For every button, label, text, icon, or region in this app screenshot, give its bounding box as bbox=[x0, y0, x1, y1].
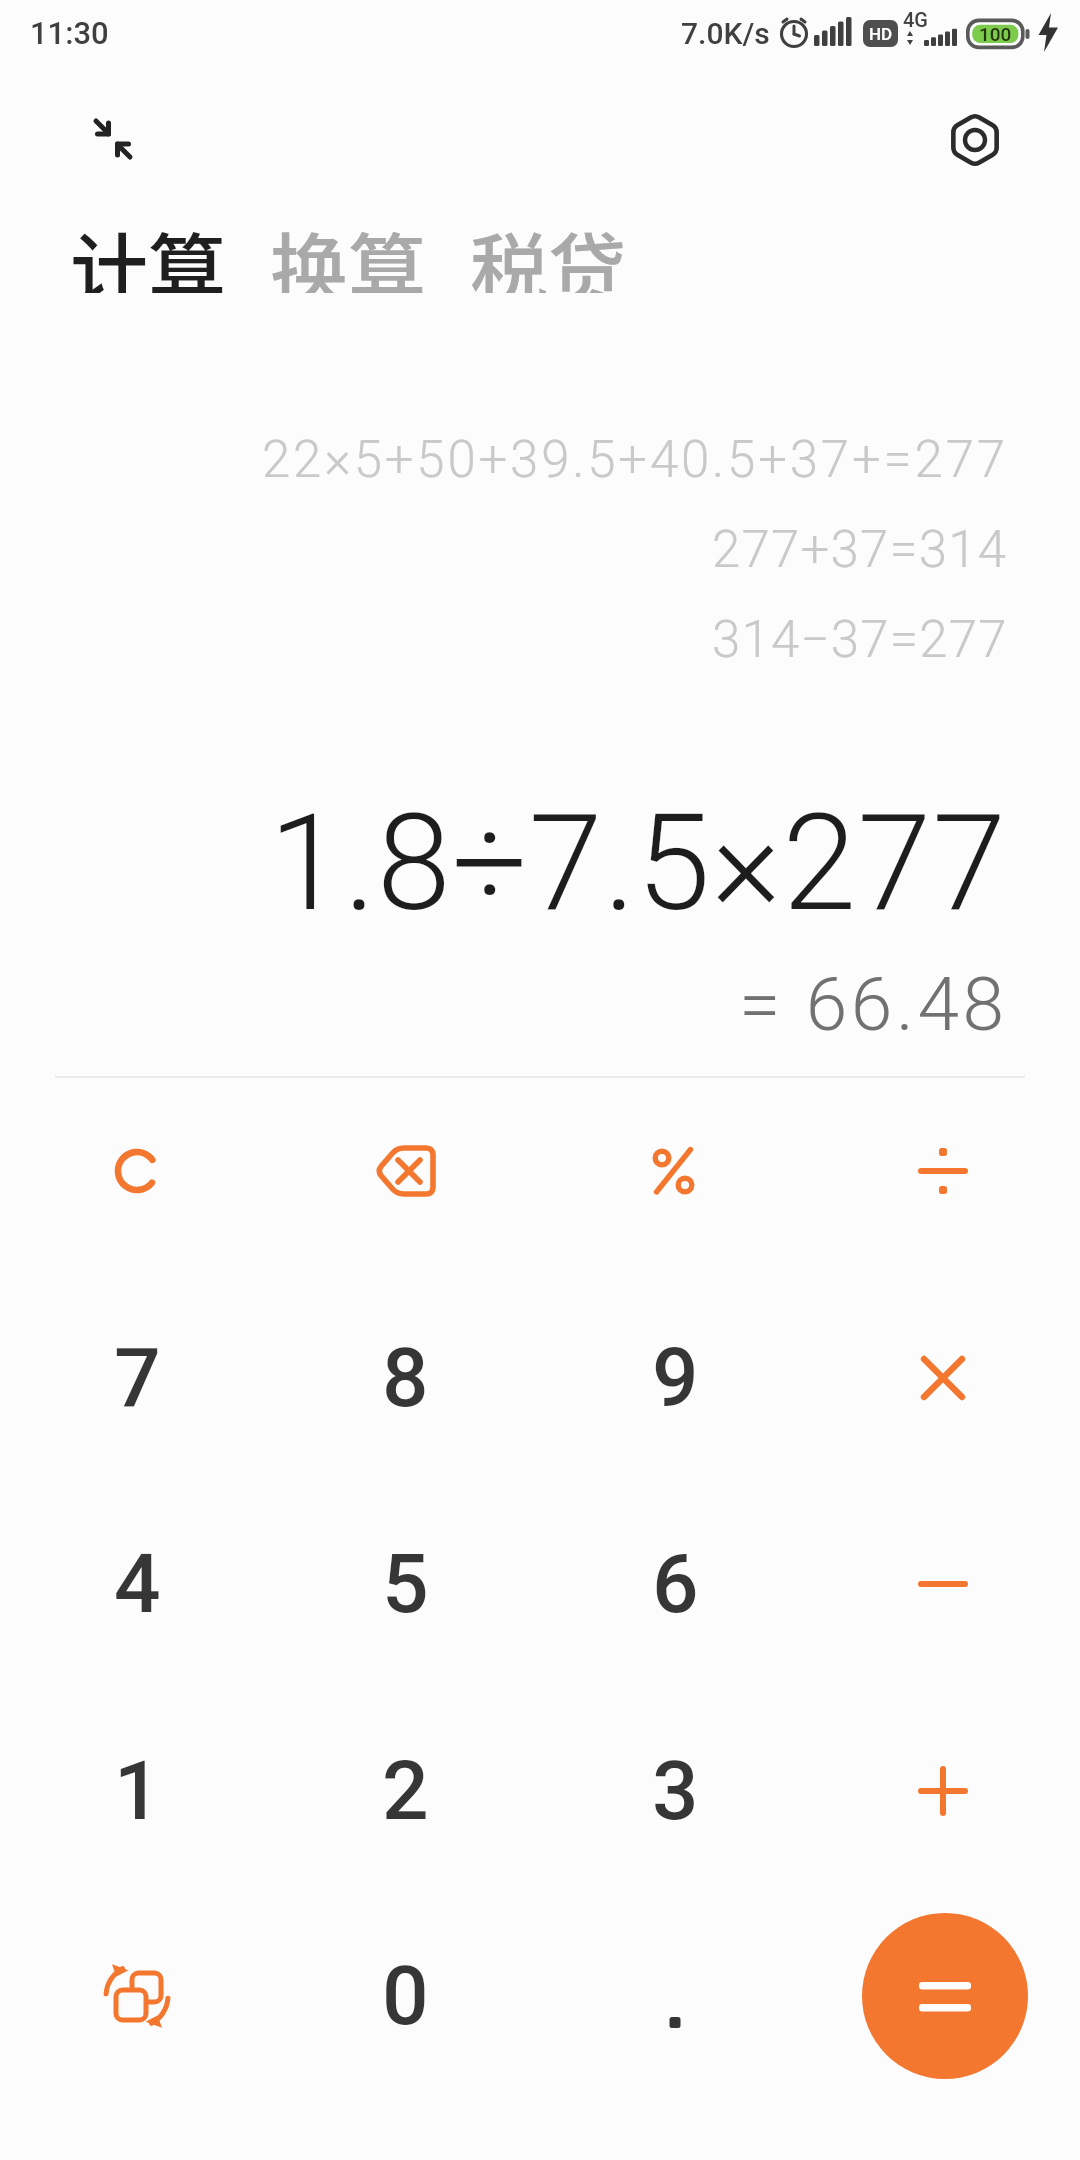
button[interactable]: 6 bbox=[570, 1494, 780, 1674]
staticText: 277+37=314 bbox=[712, 520, 1008, 580]
staticText: 9 bbox=[652, 1330, 699, 1426]
button[interactable] bbox=[300, 1081, 510, 1261]
button[interactable] bbox=[838, 1494, 1048, 1674]
button[interactable]: 7 bbox=[32, 1288, 242, 1468]
staticText: 换算 bbox=[270, 209, 427, 293]
staticText: 7 bbox=[114, 1330, 161, 1426]
button[interactable] bbox=[570, 1906, 780, 2086]
staticText: 2 bbox=[382, 1743, 429, 1839]
staticText: 5 bbox=[382, 1536, 429, 1632]
staticText: 7.0K/s bbox=[681, 16, 770, 51]
staticText: 22×5+50+39.5+40.5+37+=277 bbox=[262, 430, 1008, 490]
button[interactable]: 4 bbox=[32, 1494, 242, 1674]
staticText: 1 bbox=[114, 1743, 161, 1839]
button[interactable]: 8 bbox=[300, 1288, 510, 1468]
button[interactable]: 税贷 bbox=[470, 209, 634, 293]
staticText: 6 bbox=[652, 1536, 699, 1632]
button[interactable]: 9 bbox=[570, 1288, 780, 1468]
button[interactable] bbox=[838, 1081, 1048, 1261]
staticText: 11:30 bbox=[30, 15, 109, 51]
button[interactable] bbox=[862, 1913, 1028, 2079]
button[interactable]: 换算 bbox=[270, 209, 434, 293]
staticText: 4G bbox=[903, 8, 928, 31]
button[interactable]: 0 bbox=[300, 1906, 510, 2086]
staticText: 税贷 bbox=[470, 209, 627, 293]
button[interactable]: 计算 bbox=[70, 209, 234, 293]
staticText: 1.8÷7.5×277 bbox=[269, 786, 1008, 942]
button[interactable] bbox=[73, 99, 153, 179]
staticText: = 66.48 bbox=[739, 960, 1008, 1045]
staticText: 314−37=277 bbox=[712, 610, 1008, 670]
staticText: 3 bbox=[652, 1743, 699, 1839]
button[interactable] bbox=[940, 105, 1010, 175]
staticText: HD bbox=[869, 24, 893, 44]
button[interactable]: 3 bbox=[570, 1701, 780, 1881]
staticText: 100 bbox=[979, 23, 1012, 45]
button[interactable] bbox=[32, 1906, 242, 2086]
button[interactable]: 2 bbox=[300, 1701, 510, 1881]
button[interactable] bbox=[838, 1701, 1048, 1881]
button[interactable] bbox=[838, 1288, 1048, 1468]
staticText: 4 bbox=[114, 1536, 161, 1632]
button[interactable]: 5 bbox=[300, 1494, 510, 1674]
staticText: 计算 bbox=[70, 209, 227, 293]
button[interactable] bbox=[32, 1081, 242, 1261]
button[interactable]: 1 bbox=[32, 1701, 242, 1881]
staticText: 0 bbox=[382, 1948, 429, 2044]
button[interactable] bbox=[570, 1081, 780, 1261]
staticText: 8 bbox=[382, 1330, 429, 1426]
